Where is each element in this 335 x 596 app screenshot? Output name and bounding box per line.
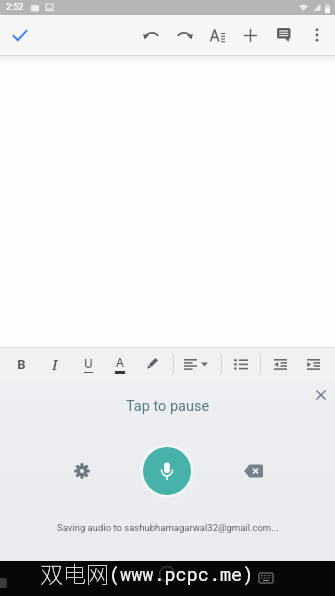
- button[interactable]: [137, 347, 167, 381]
- staticText: Saving audio to sashubhamagarwal32@gmail…: [57, 522, 279, 533]
- button[interactable]: [178, 347, 214, 381]
- staticText: B: [17, 355, 26, 373]
- button[interactable]: [237, 455, 269, 487]
- button[interactable]: A: [105, 347, 135, 381]
- button[interactable]: [298, 347, 328, 381]
- staticText: 2:52: [6, 2, 24, 13]
- button[interactable]: [234, 15, 267, 55]
- button[interactable]: [168, 15, 201, 55]
- button[interactable]: [143, 447, 191, 495]
- button[interactable]: [226, 347, 256, 381]
- button[interactable]: [267, 15, 300, 55]
- button[interactable]: [265, 347, 295, 381]
- staticText: A: [116, 354, 124, 370]
- button[interactable]: U: [73, 347, 103, 381]
- button[interactable]: [300, 15, 333, 55]
- button[interactable]: [310, 384, 332, 406]
- button[interactable]: I: [40, 347, 70, 381]
- button[interactable]: B: [6, 347, 36, 381]
- button[interactable]: [201, 15, 234, 55]
- staticText: Tap to pause: [126, 398, 210, 415]
- staticText: I: [52, 355, 58, 374]
- staticText: U: [84, 355, 93, 371]
- button[interactable]: [135, 15, 168, 55]
- button[interactable]: [66, 455, 98, 487]
- staticText: (www.pcpc.me): [109, 562, 254, 586]
- button[interactable]: [0, 15, 40, 55]
- staticText: 双电网: [40, 556, 109, 589]
